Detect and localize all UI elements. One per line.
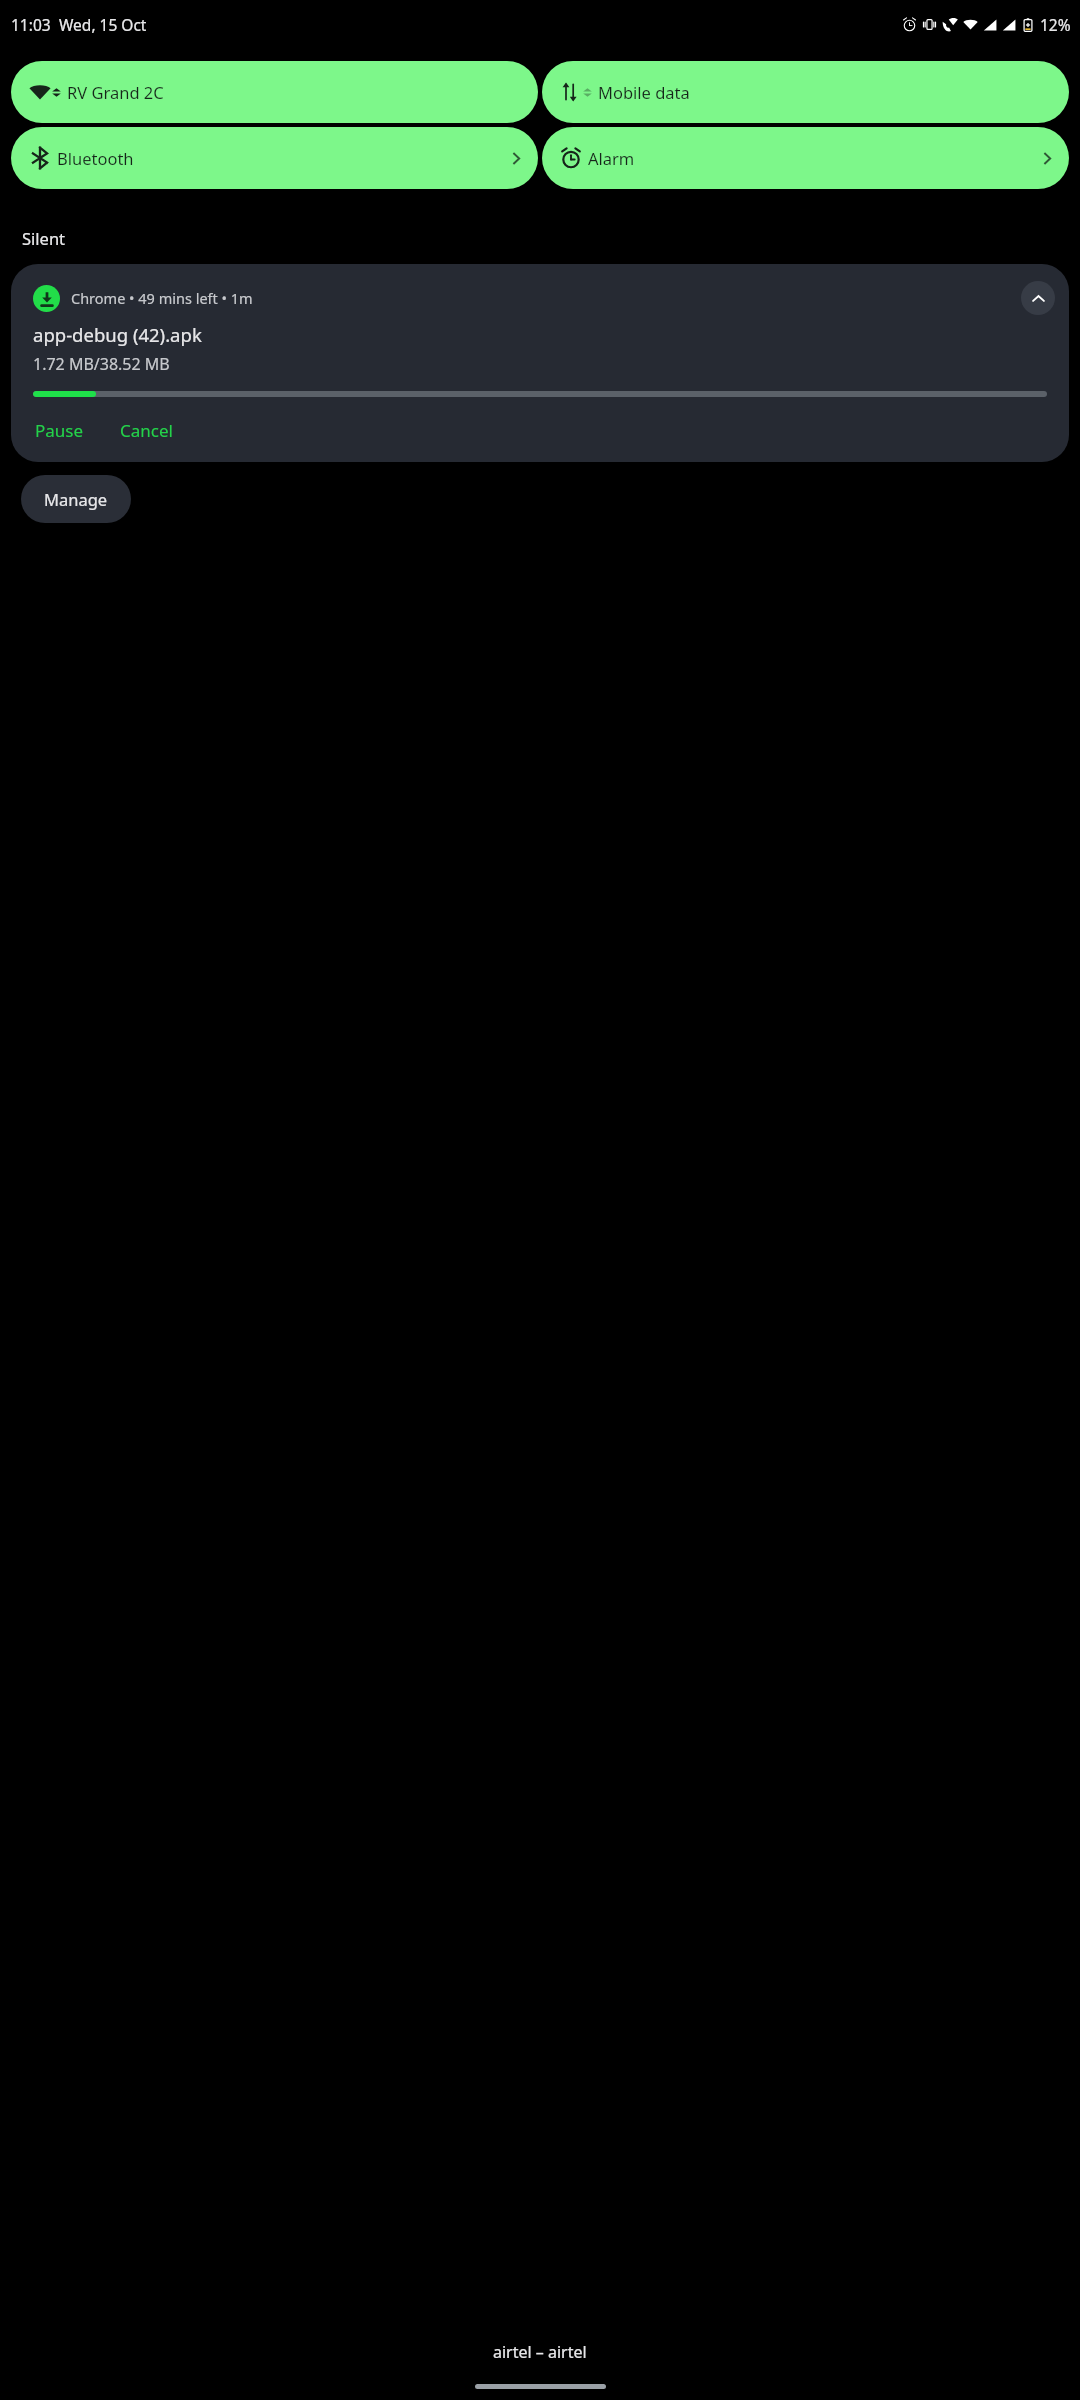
staticText: Wed, 15 Oct: [59, 14, 147, 35]
button[interactable]: Cancel: [118, 409, 175, 452]
staticText: 11:03: [11, 14, 51, 35]
button[interactable]: Pause: [33, 409, 86, 452]
staticText: RV Grand 2C: [67, 81, 524, 103]
staticText: Silent: [22, 227, 66, 249]
staticText: app-debug (42).apk: [33, 322, 202, 347]
staticText: airtel – airtel: [493, 2341, 587, 2363]
staticText: Chrome • 49 mins left • 1m: [71, 288, 1021, 308]
button[interactable]: Mobile data: [542, 61, 1069, 123]
button[interactable]: Alarm: [542, 127, 1069, 189]
button[interactable]: Bluetooth: [11, 127, 538, 189]
button[interactable]: Manage: [21, 475, 131, 523]
staticText: Bluetooth: [57, 147, 509, 169]
staticText: Alarm: [588, 147, 1040, 169]
button[interactable]: Chrome • 49 mins left • 1m: [11, 264, 1069, 462]
staticText: Cancel: [120, 419, 173, 442]
staticText: Manage: [44, 488, 108, 510]
staticText: 1.72 MB/38.52 MB: [33, 353, 170, 375]
button[interactable]: Collapse notification: [1021, 281, 1055, 315]
staticText: Pause: [35, 419, 84, 442]
staticText: Mobile data: [598, 81, 1055, 103]
staticText: 12%: [1040, 14, 1071, 35]
button[interactable]: RV Grand 2C: [11, 61, 538, 123]
